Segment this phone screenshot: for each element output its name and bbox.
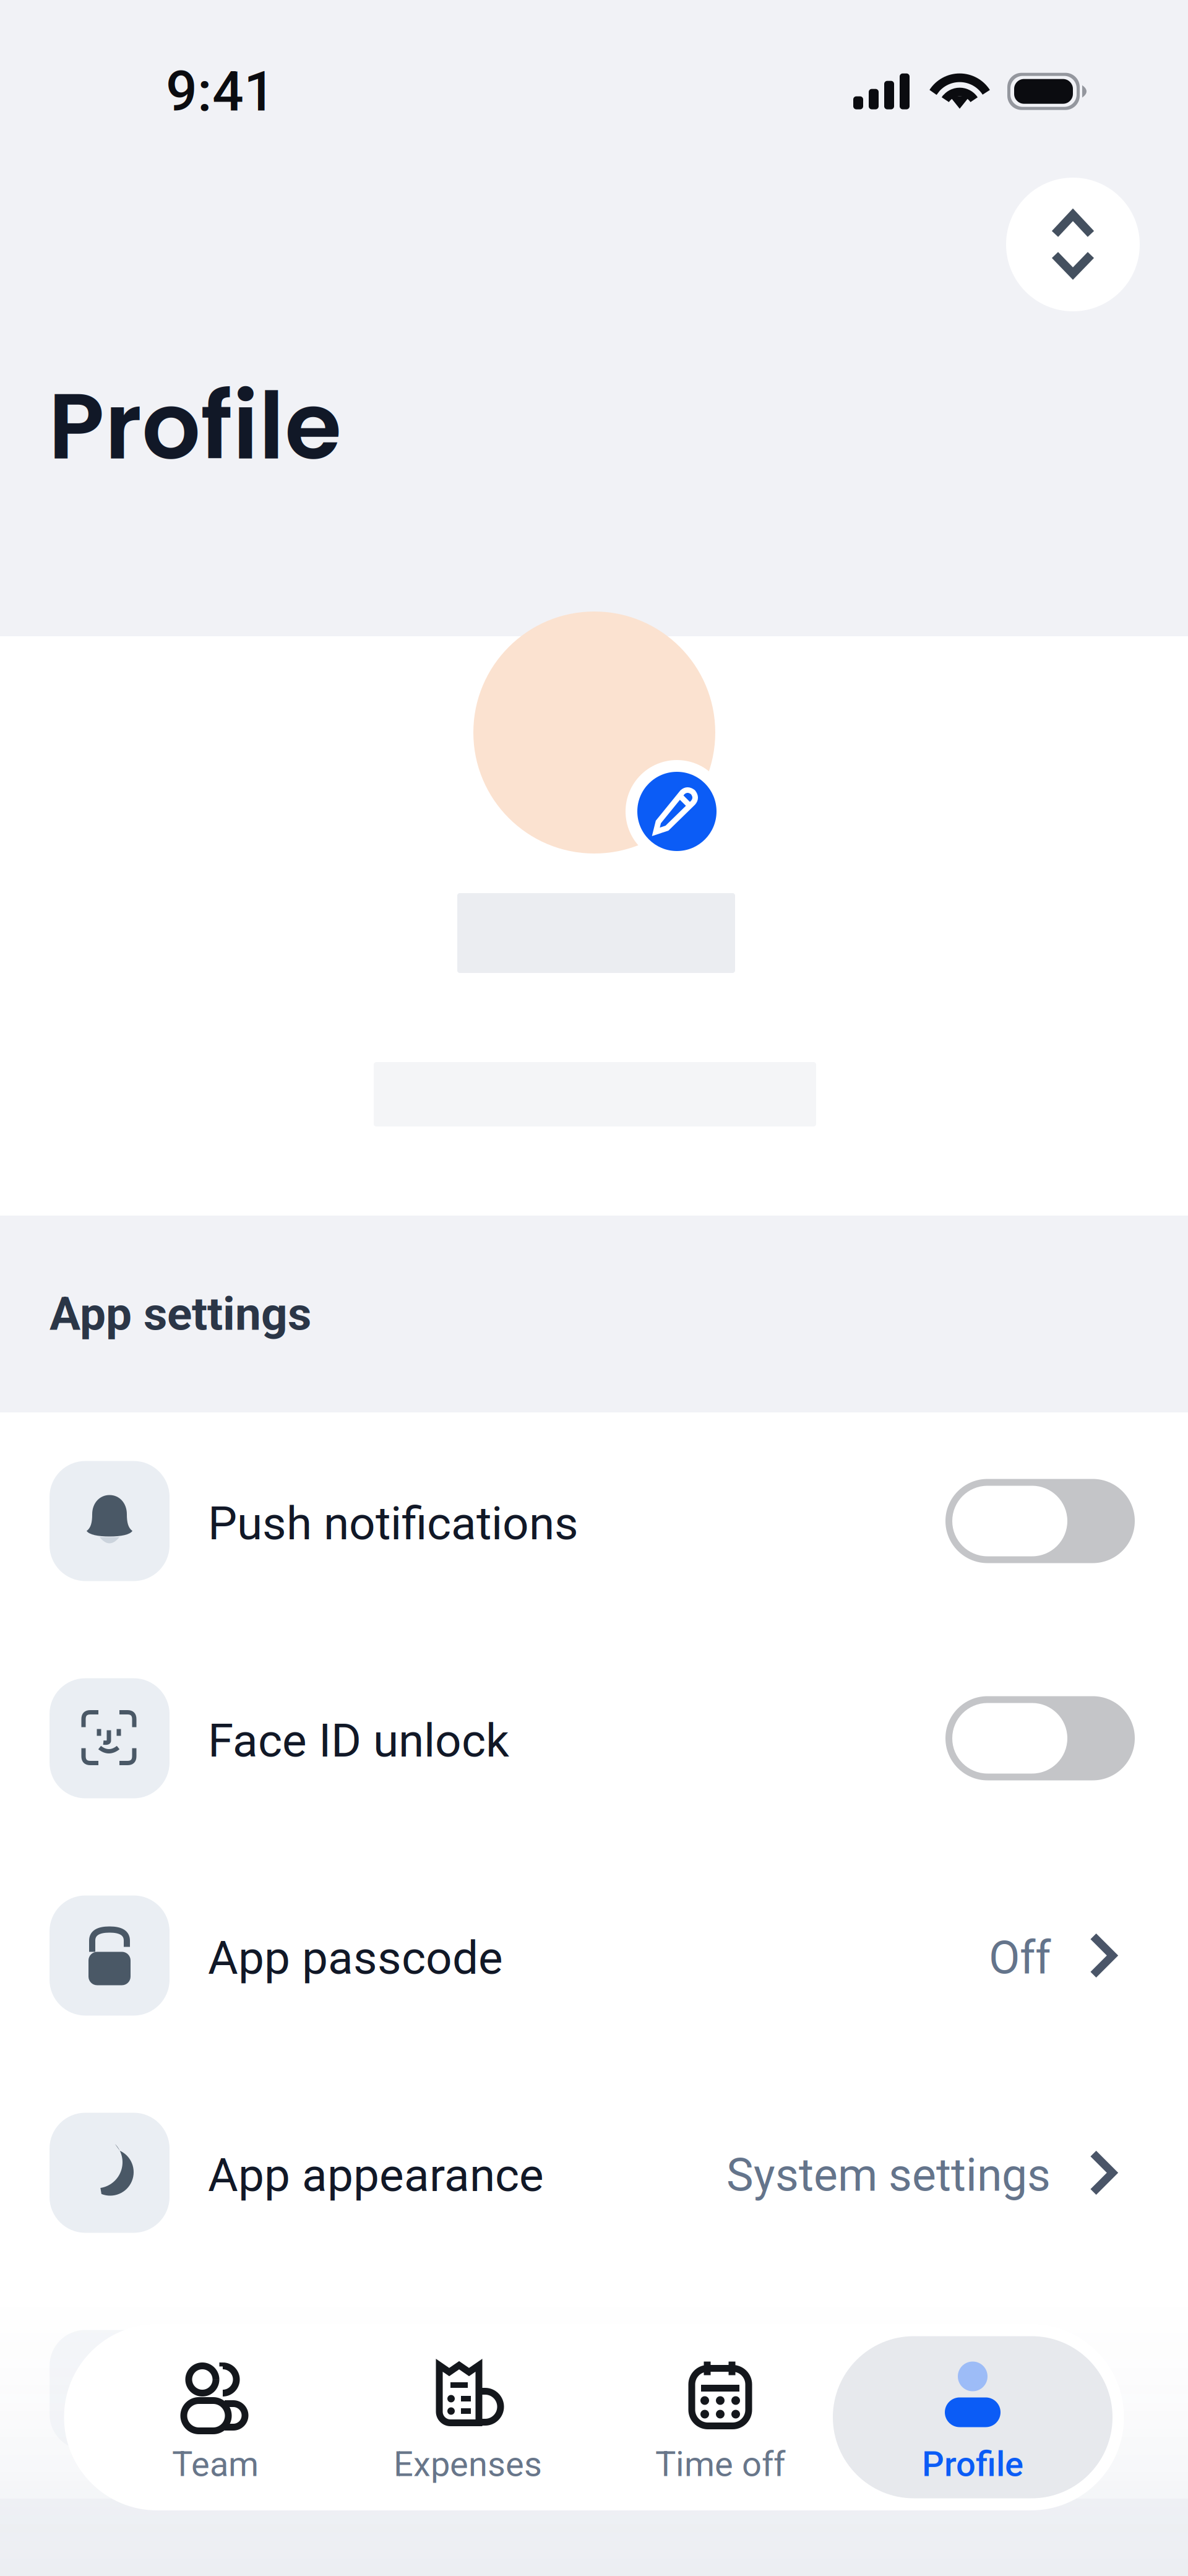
staticText: App passcode (208, 1931, 503, 1985)
button[interactable]: App appearance (0, 2064, 1188, 2281)
staticText: Profile (48, 361, 342, 491)
staticText: Expenses (394, 2444, 542, 2484)
staticText: Off (989, 1931, 1051, 1985)
button[interactable]: Profile (846, 2336, 1099, 2498)
staticText: Face ID unlock (208, 1714, 509, 1768)
staticText: App settings (49, 1287, 311, 1341)
staticText: Left-handed mode (208, 2365, 583, 2420)
button[interactable]: Team (89, 2336, 342, 2498)
staticText: System settings (726, 2149, 1051, 2202)
staticText: Time off (655, 2444, 785, 2484)
staticText: Team (172, 2444, 259, 2484)
staticText: Profile (922, 2444, 1023, 2484)
staticText: 9:41 (166, 59, 275, 124)
button[interactable]: Push notifications (0, 1412, 1188, 1630)
button[interactable]: Expenses (342, 2336, 594, 2498)
staticText: Push notifications (208, 1496, 579, 1551)
button[interactable]: Time off (594, 2336, 846, 2498)
button[interactable]: Face ID unlock (0, 1630, 1188, 1847)
staticText: App appearance (208, 2148, 544, 2202)
button[interactable]: App passcode (0, 1847, 1188, 2064)
button[interactable]: Switch account (1006, 178, 1140, 311)
